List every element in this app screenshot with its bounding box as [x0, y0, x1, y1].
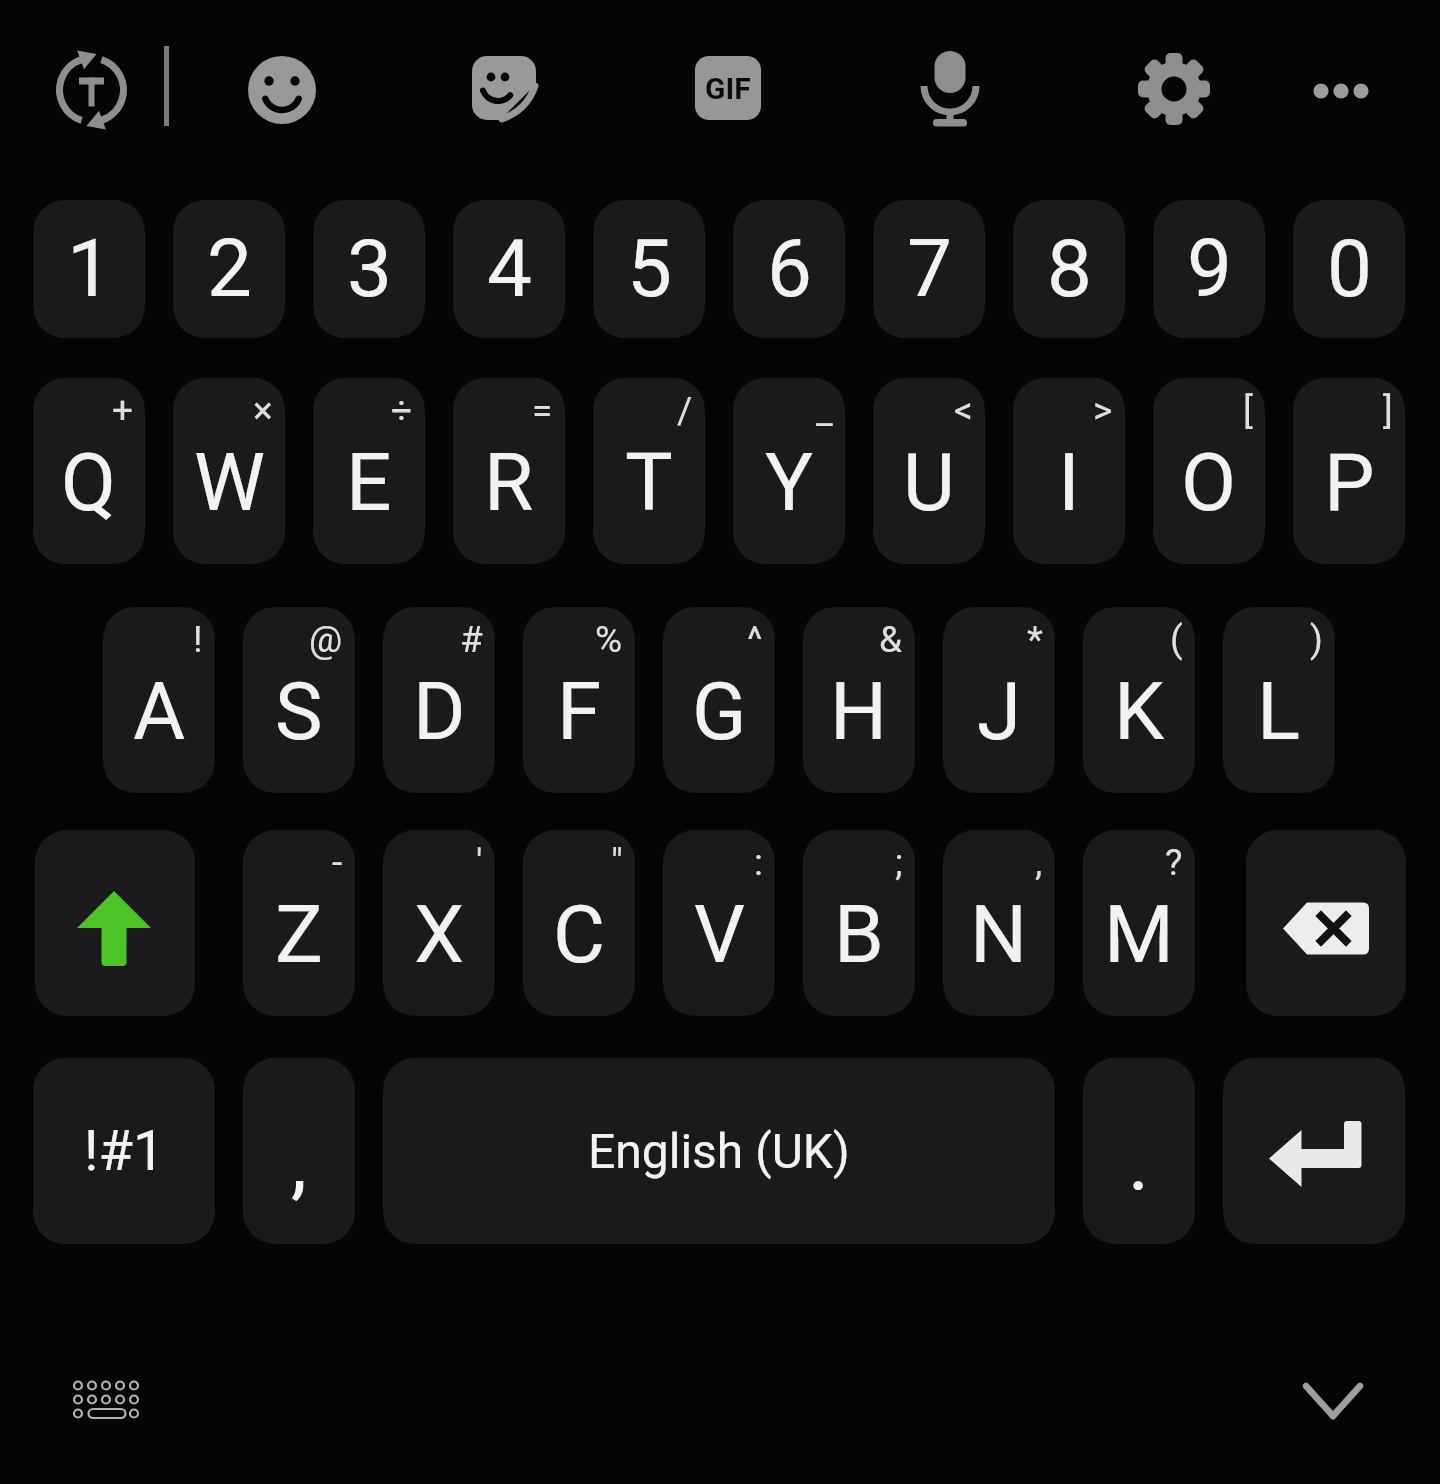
staticText: 9 — [1187, 222, 1232, 316]
staticText: 7 — [907, 222, 952, 316]
staticText: ! — [193, 618, 203, 661]
staticText: & — [879, 618, 903, 661]
button[interactable]: 5 — [593, 200, 705, 338]
staticText: A — [133, 665, 186, 759]
staticText: G — [692, 665, 747, 759]
staticText: C — [553, 888, 606, 982]
button[interactable]: E — [313, 378, 425, 564]
button[interactable] — [920, 50, 980, 128]
button[interactable]: 7 — [873, 200, 985, 338]
staticText: @ — [309, 618, 343, 661]
staticText: English (UK) — [588, 1123, 850, 1179]
staticText: # — [460, 618, 483, 661]
staticText: ÷ — [391, 389, 413, 432]
button[interactable] — [53, 52, 131, 130]
staticText: > — [1093, 389, 1113, 432]
button[interactable]: C — [523, 830, 635, 1016]
button[interactable] — [472, 55, 538, 123]
button[interactable]: I — [1013, 378, 1125, 564]
staticText: T — [625, 436, 673, 530]
staticText: J — [977, 665, 1022, 759]
button[interactable]: 9 — [1153, 200, 1265, 338]
button[interactable] — [1246, 830, 1406, 1016]
staticText: N — [970, 888, 1028, 982]
staticText: F — [557, 665, 602, 759]
button[interactable]: 8 — [1013, 200, 1125, 338]
button[interactable]: J — [943, 607, 1055, 793]
staticText: = — [532, 389, 553, 432]
button[interactable] — [1290, 1370, 1376, 1430]
button[interactable]: 6 — [733, 200, 845, 338]
staticText: O — [1181, 436, 1237, 530]
staticText: + — [112, 389, 133, 432]
staticText: Q — [61, 436, 117, 530]
button[interactable]: A — [103, 607, 215, 793]
staticText: I — [1058, 436, 1080, 530]
button[interactable]: D — [383, 607, 495, 793]
button[interactable]: O — [1153, 378, 1265, 564]
staticText: ' — [476, 841, 483, 884]
staticText: 5 — [627, 222, 672, 316]
staticText: Z — [275, 888, 323, 982]
staticText: _ — [816, 389, 833, 432]
staticText: X — [414, 888, 465, 982]
button[interactable]: !#1 — [33, 1058, 215, 1244]
button[interactable] — [248, 56, 316, 124]
button[interactable]: N — [943, 830, 1055, 1016]
button[interactable]: , — [243, 1058, 355, 1244]
button[interactable]: GIF — [695, 56, 761, 120]
button[interactable]: P — [1293, 378, 1405, 564]
staticText: ] — [1383, 389, 1393, 432]
button[interactable]: W — [173, 378, 285, 564]
button[interactable]: M — [1083, 830, 1195, 1016]
staticText: : — [754, 841, 763, 884]
button[interactable]: 4 — [453, 200, 565, 338]
button[interactable]: T — [593, 378, 705, 564]
button[interactable]: X — [383, 830, 495, 1016]
staticText: W — [194, 436, 265, 530]
button[interactable]: F — [523, 607, 635, 793]
staticText: M — [1104, 888, 1174, 982]
staticText: - — [332, 841, 343, 884]
button[interactable] — [1308, 78, 1372, 104]
button[interactable]: Y — [733, 378, 845, 564]
button[interactable] — [35, 830, 195, 1016]
button[interactable]: 1 — [33, 200, 145, 338]
button[interactable]: S — [243, 607, 355, 793]
staticText: 2 — [207, 222, 252, 316]
staticText: B — [834, 888, 884, 982]
button[interactable]: 0 — [1293, 200, 1405, 338]
button[interactable]: . — [1083, 1058, 1195, 1244]
staticText: 1 — [67, 222, 112, 316]
staticText: ? — [1165, 841, 1183, 884]
button[interactable] — [1223, 1058, 1405, 1244]
staticText: " — [611, 841, 623, 884]
staticText: * — [1027, 618, 1043, 661]
button[interactable] — [1138, 53, 1210, 125]
button[interactable]: K — [1083, 607, 1195, 793]
staticText: K — [1114, 665, 1165, 759]
button[interactable]: G — [663, 607, 775, 793]
button[interactable]: Z — [243, 830, 355, 1016]
button[interactable]: 3 — [313, 200, 425, 338]
staticText: H — [830, 665, 888, 759]
button[interactable]: B — [803, 830, 915, 1016]
button[interactable]: R — [453, 378, 565, 564]
staticText: !#1 — [84, 1118, 165, 1184]
button[interactable]: V — [663, 830, 775, 1016]
button[interactable] — [60, 1370, 152, 1430]
staticText: 8 — [1047, 222, 1092, 316]
staticText: 4 — [487, 222, 532, 316]
button[interactable]: English (UK) — [383, 1058, 1055, 1244]
button[interactable]: H — [803, 607, 915, 793]
staticText: × — [253, 389, 273, 432]
staticText: GIF — [705, 71, 751, 106]
staticText: S — [275, 665, 323, 759]
button[interactable]: Q — [33, 378, 145, 564]
staticText: Y — [765, 436, 814, 530]
button[interactable]: 2 — [173, 200, 285, 338]
button[interactable]: U — [873, 378, 985, 564]
button[interactable]: L — [1223, 607, 1335, 793]
staticText: , — [1035, 841, 1043, 884]
